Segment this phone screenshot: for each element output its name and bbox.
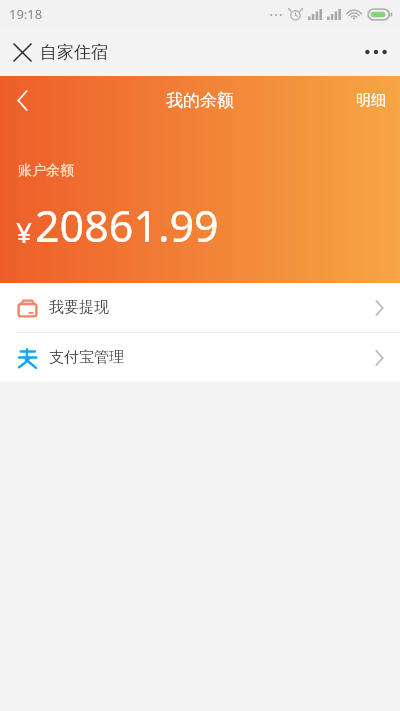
staticText: 自家住宿 [40,42,108,63]
button[interactable]: 我要提现 [0,283,400,332]
button[interactable]: 支付宝管理 [0,333,400,382]
staticText: 账户余额 [18,162,74,180]
staticText: 19:18 [9,5,43,23]
staticText: 20861.99 [35,196,219,255]
staticText: 支付宝管理 [49,348,124,367]
staticText: 我要提现 [49,298,109,317]
staticText: ¥ [16,213,33,251]
button[interactable]: Back [0,78,44,122]
button[interactable]: 明细 [342,79,400,122]
staticText: 我的余额 [166,90,234,111]
button[interactable]: Close [0,30,44,74]
button[interactable]: More options [352,28,400,76]
staticText: 明细 [356,91,386,110]
